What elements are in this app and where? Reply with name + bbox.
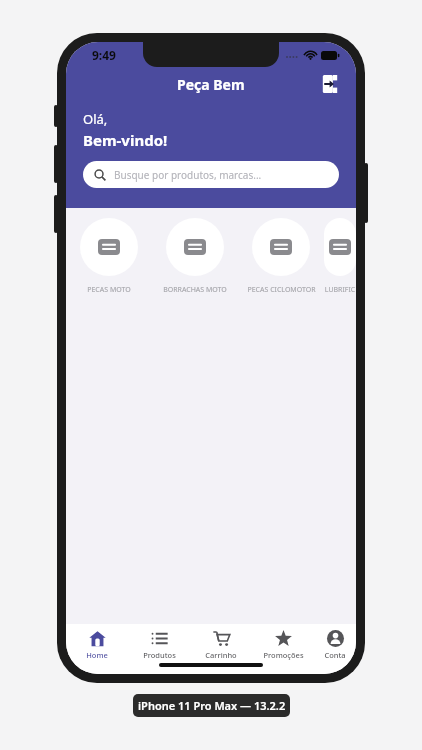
staticText: Busque por produtos, marcas... [114, 168, 262, 182]
staticText: Olá, [83, 110, 108, 128]
button[interactable]: Promoções [252, 630, 314, 660]
staticText: PECAS MOTO [87, 285, 131, 295]
staticText: Produtos [143, 650, 176, 660]
button[interactable]: PECAS MOTO [66, 218, 152, 295]
button[interactable]: Produtos [128, 630, 190, 660]
staticText: iPhone 11 Pro Max — 13.2.2 [138, 698, 286, 713]
staticText: Home [86, 650, 108, 660]
button[interactable]: Home [66, 630, 128, 660]
staticText: Conta [324, 650, 346, 660]
button[interactable]: Conta [314, 630, 356, 660]
button[interactable]: BORRACHAS MOTO [152, 218, 238, 295]
button[interactable]: Busque por produtos, marcas... [83, 161, 339, 188]
staticText: Bem-vindo! [83, 130, 168, 150]
staticText: Carrinho [205, 650, 237, 660]
staticText: Promoções [263, 650, 304, 660]
button[interactable]: Sair [316, 70, 344, 98]
staticText: 9:49 [92, 47, 116, 63]
staticText: BORRACHAS MOTO [163, 285, 227, 295]
button[interactable]: LUBRIFICANTES [324, 218, 356, 295]
staticText: Peça Bem [177, 75, 245, 94]
button[interactable]: PECAS CICLOMOTOR [238, 218, 324, 295]
staticText: PECAS CICLOMOTOR [247, 285, 316, 295]
staticText: LUBRIFICANTES [324, 285, 356, 295]
button[interactable]: Carrinho [190, 630, 252, 660]
